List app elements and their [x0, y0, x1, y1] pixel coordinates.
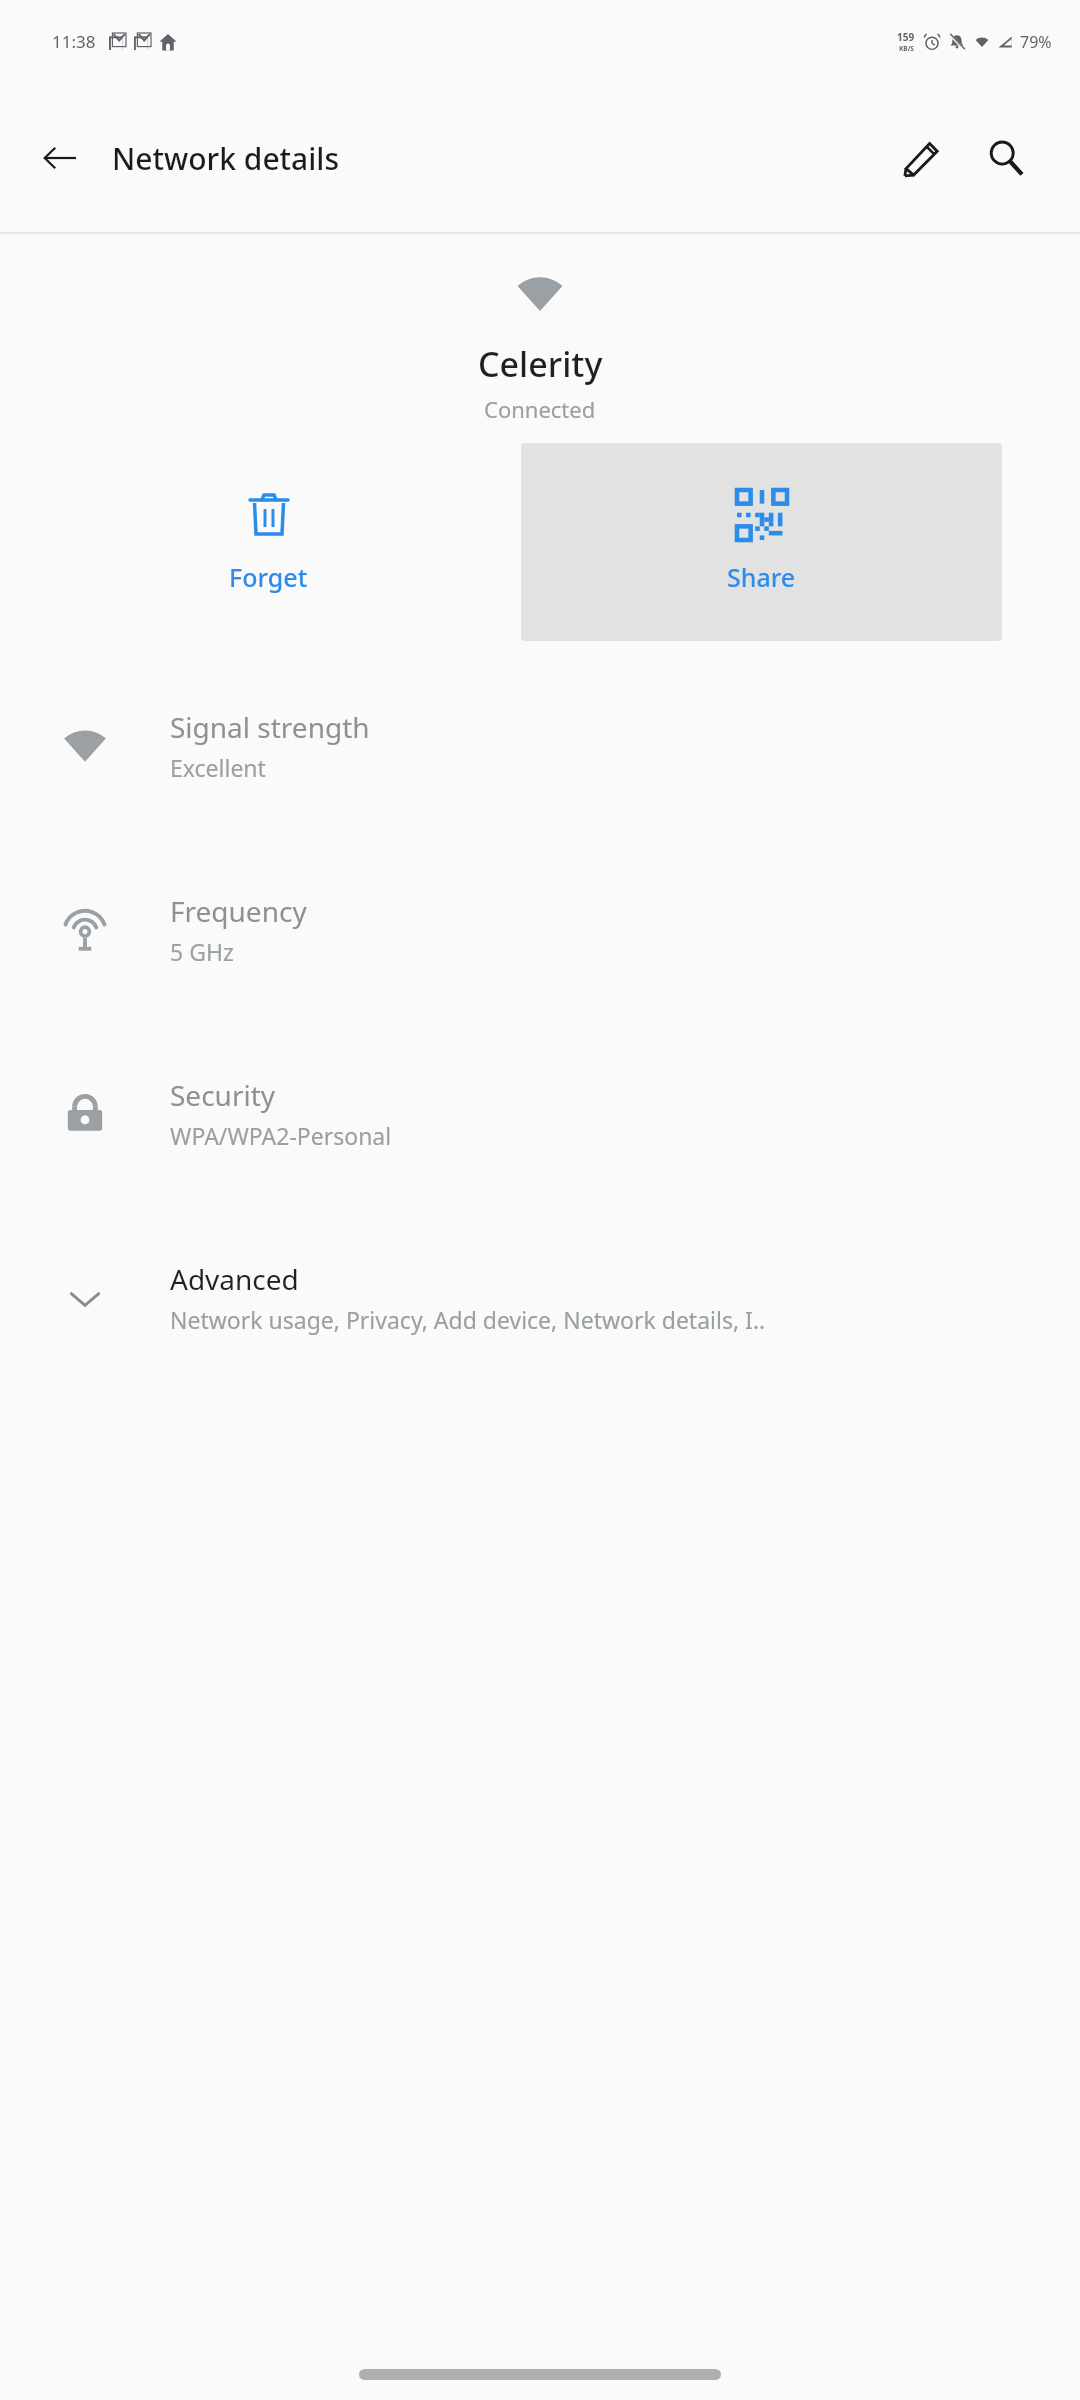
- button[interactable]: Security: [0, 1021, 1080, 1205]
- staticText: Signal strength: [170, 708, 370, 746]
- button[interactable]: Advanced: [0, 1205, 1080, 1389]
- staticText: 11:38: [52, 30, 96, 53]
- button[interactable]: Forget: [28, 443, 509, 641]
- staticText: 5 GHz: [170, 936, 234, 967]
- staticText: 79%: [1020, 31, 1052, 53]
- staticText: Frequency: [170, 892, 307, 930]
- staticText: Forget: [229, 560, 308, 594]
- staticText: Celerity: [478, 341, 603, 387]
- staticText: Security: [170, 1076, 276, 1114]
- button[interactable]: Back: [24, 122, 96, 194]
- staticText: Network details: [112, 138, 340, 179]
- staticText: Network usage, Privacy, Add device, Netw…: [170, 1304, 766, 1335]
- staticText: KB/S: [899, 44, 914, 53]
- button[interactable]: Search: [968, 120, 1044, 196]
- staticText: WPA/WPA2-Personal: [170, 1120, 392, 1151]
- button[interactable]: Frequency: [0, 837, 1080, 1021]
- staticText: 159: [897, 30, 915, 44]
- button[interactable]: Edit: [884, 120, 960, 196]
- button[interactable]: Share: [521, 443, 1002, 641]
- staticText: Excellent: [170, 752, 266, 783]
- button[interactable]: Signal strength: [0, 653, 1080, 837]
- staticText: Connected: [484, 394, 596, 424]
- staticText: Share: [727, 560, 796, 594]
- staticText: Advanced: [170, 1260, 299, 1298]
